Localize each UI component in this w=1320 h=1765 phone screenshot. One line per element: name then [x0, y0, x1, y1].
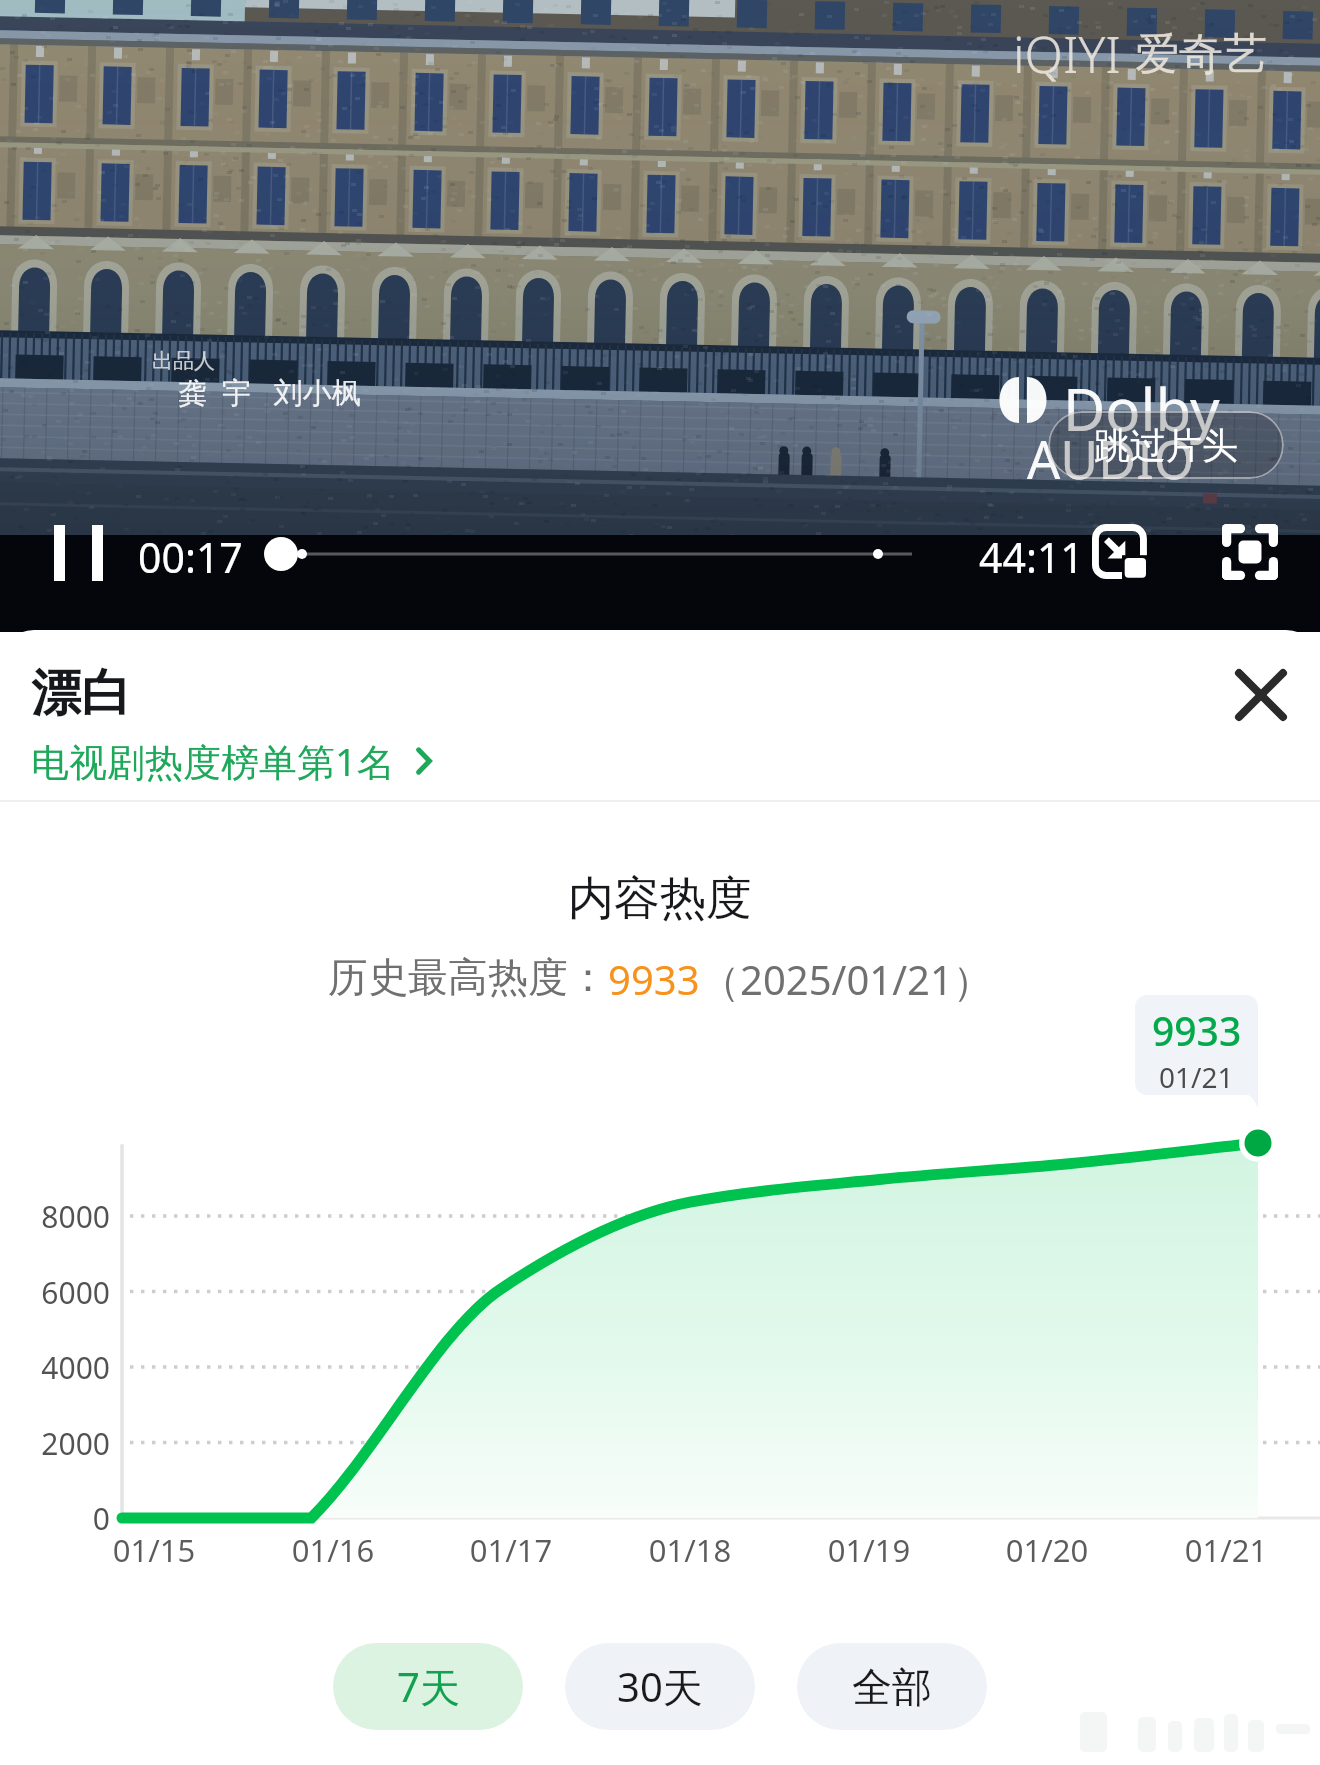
staticText: 漂白	[31, 662, 131, 725]
button[interactable]: Close	[1226, 660, 1296, 730]
staticText: 0	[0, 1498, 110, 1539]
staticText: 7天	[397, 1659, 460, 1714]
staticText: 出品人	[152, 348, 215, 374]
staticText: 9933	[608, 952, 700, 1006]
staticText: 01/15	[74, 1529, 234, 1571]
staticText: 内容热度	[0, 870, 1320, 928]
staticText: 电视剧热度榜单第1名	[31, 735, 395, 787]
button[interactable]: 30天	[565, 1643, 755, 1730]
button[interactable]: 全部	[797, 1643, 987, 1730]
staticText: 44:11	[979, 529, 1084, 585]
staticText: 01/21	[1159, 1058, 1234, 1095]
staticText: 01/18	[610, 1529, 770, 1571]
button[interactable]: Pause	[48, 522, 110, 582]
staticText: 00:17	[138, 529, 243, 585]
staticText: 4000	[0, 1347, 110, 1388]
staticText: （2025/01/21）	[700, 952, 993, 1007]
staticText: AUDIO	[1027, 423, 1195, 494]
button[interactable]: Fullscreen	[1222, 524, 1278, 580]
staticText: 01/17	[431, 1529, 591, 1571]
staticText: Dolby	[1063, 369, 1220, 448]
staticText: 01/19	[789, 1529, 949, 1571]
staticText: 6000	[0, 1272, 110, 1313]
button[interactable]: Picture in picture	[1092, 524, 1152, 584]
button[interactable]: 跳过片头	[1048, 411, 1284, 479]
staticText: iQIYI	[1013, 20, 1121, 88]
staticText: 跳过片头	[1094, 423, 1238, 468]
staticText: 01/20	[967, 1529, 1127, 1571]
staticText: 全部	[852, 1662, 932, 1712]
staticText: 爱奇艺	[1135, 27, 1267, 82]
staticText: 2000	[0, 1423, 110, 1464]
button[interactable]: 7天	[333, 1643, 523, 1730]
staticText: 9933	[1152, 1004, 1242, 1057]
staticText: 30天	[617, 1659, 703, 1714]
staticText: 历史最高热度：	[328, 952, 608, 1002]
staticText: 01/16	[253, 1529, 413, 1571]
button[interactable]: Seek bar	[258, 532, 918, 576]
staticText: 8000	[0, 1196, 110, 1237]
staticText: 龚 宇 刘小枫	[178, 372, 361, 412]
button[interactable]: 电视剧热度榜单第1名	[31, 735, 441, 787]
staticText: 01/21	[1146, 1529, 1306, 1571]
